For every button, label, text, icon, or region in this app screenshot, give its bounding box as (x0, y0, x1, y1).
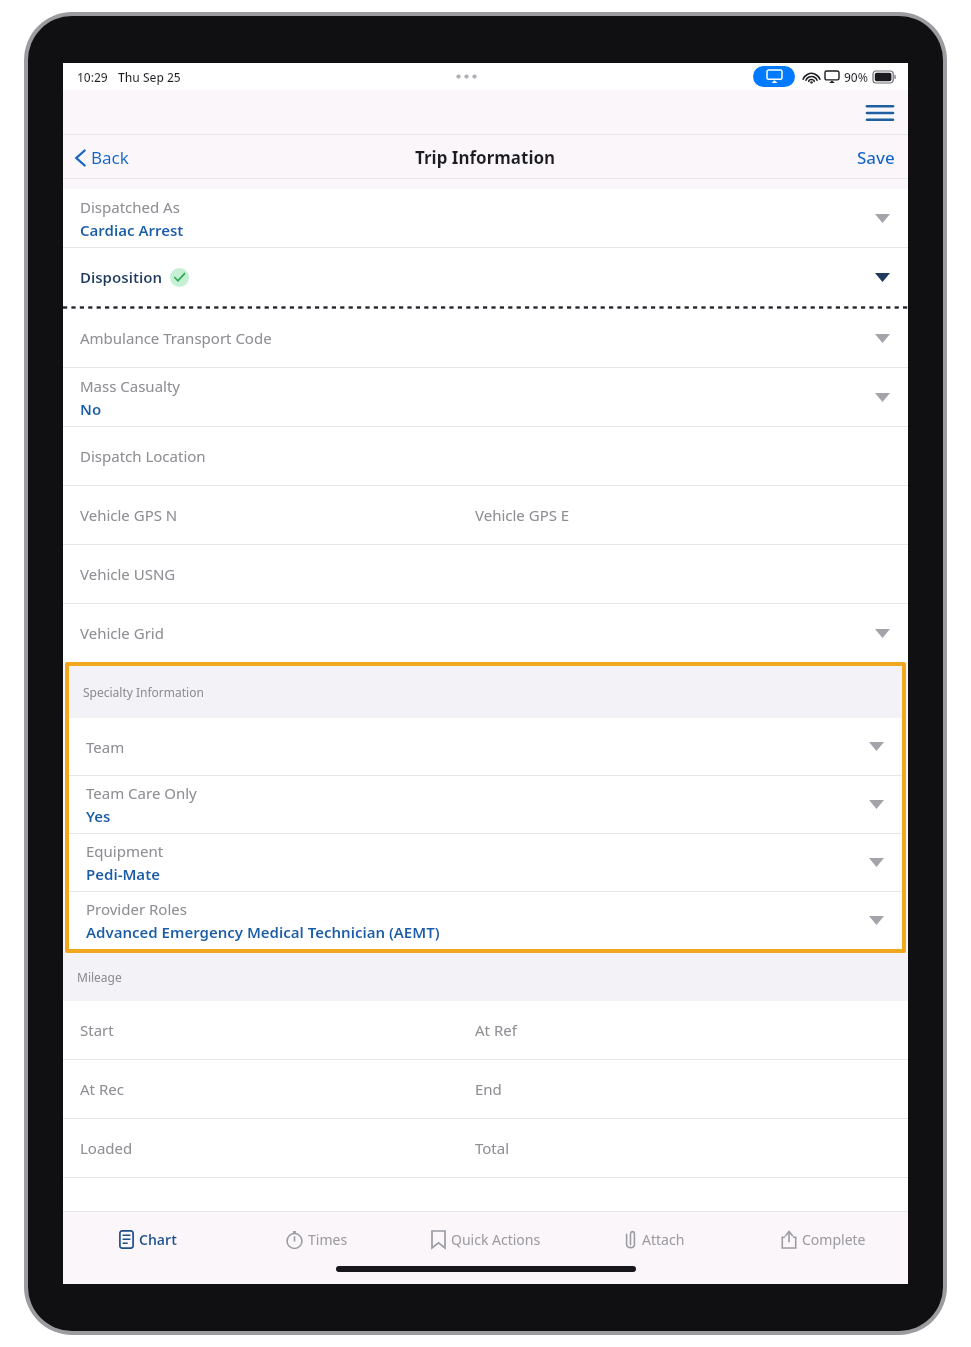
staticText: Team Care Only (86, 783, 197, 803)
staticText: Advanced Emergency Medical Technician (A… (86, 922, 440, 942)
button[interactable]: Vehicle GPS N (63, 486, 908, 544)
staticText: Back (91, 146, 129, 169)
button[interactable]: Back (75, 146, 129, 169)
staticText: Vehicle Grid (80, 623, 164, 643)
staticText: Mass Casualty (80, 376, 180, 396)
staticText: Pedi-Mate (86, 864, 161, 884)
button[interactable]: Complete (739, 1212, 908, 1266)
staticText: Total (475, 1138, 510, 1158)
staticText: Equipment (86, 841, 164, 861)
staticText: Quick Actions (451, 1230, 541, 1249)
button[interactable]: Menu (863, 96, 897, 130)
staticText: End (475, 1079, 502, 1099)
staticText: Complete (802, 1230, 866, 1249)
staticText: Provider Roles (86, 899, 187, 919)
button[interactable]: Save (857, 146, 895, 169)
button[interactable]: Disposition (63, 248, 908, 306)
button[interactable]: Loaded (63, 1119, 908, 1177)
staticText: Cardiac Arrest (80, 220, 184, 240)
button[interactable]: Ambulance Transport Code (63, 309, 908, 367)
button[interactable]: Quick Actions (401, 1212, 570, 1266)
staticText: At Ref (475, 1020, 517, 1040)
staticText: Start (80, 1020, 114, 1040)
staticText: 10:29 (77, 69, 108, 85)
button[interactable]: Vehicle USNG (63, 545, 908, 603)
staticText: Loaded (80, 1138, 133, 1158)
button[interactable]: Attach (570, 1212, 739, 1266)
button[interactable]: Team (69, 718, 902, 775)
button[interactable]: At Rec (63, 1060, 908, 1118)
staticText: 90% (844, 69, 868, 85)
button[interactable]: Mass Casualty (63, 368, 908, 426)
staticText: Thu Sep 25 (118, 69, 181, 85)
staticText: Mileage (77, 969, 122, 985)
staticText: Specialty Information (83, 684, 204, 700)
staticText: Chart (139, 1230, 177, 1249)
staticText: Vehicle GPS E (475, 505, 570, 525)
staticText: Attach (642, 1230, 685, 1249)
staticText: Ambulance Transport Code (80, 328, 272, 348)
button[interactable]: Team Care Only (69, 776, 902, 833)
staticText: Dispatched As (80, 197, 180, 217)
staticText: Team (86, 737, 125, 757)
button[interactable]: Provider Roles (69, 892, 902, 949)
staticText: At Rec (80, 1079, 124, 1099)
staticText: Yes (86, 806, 111, 826)
button[interactable]: Dispatch Location (63, 427, 908, 485)
staticText: Trip Information (415, 146, 556, 169)
staticText: Times (308, 1230, 348, 1249)
button[interactable]: Equipment (69, 834, 902, 891)
staticText: Vehicle GPS N (80, 505, 178, 525)
button[interactable]: Vehicle Grid (63, 604, 908, 662)
staticText: No (80, 399, 102, 419)
button[interactable]: Dispatched As (63, 189, 908, 247)
staticText: Disposition (80, 267, 163, 287)
button[interactable]: Chart (63, 1212, 232, 1266)
button[interactable]: Times (232, 1212, 401, 1266)
staticText: Save (857, 146, 895, 169)
button[interactable]: Start (63, 1001, 908, 1059)
staticText: Dispatch Location (80, 446, 206, 466)
staticText: Vehicle USNG (80, 564, 176, 584)
